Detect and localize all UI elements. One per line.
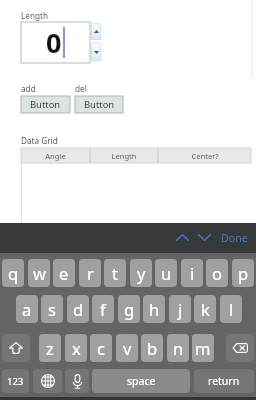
staticText: v <box>123 337 132 359</box>
button[interactable]: u <box>155 259 177 287</box>
staticText: j <box>178 298 183 320</box>
staticText: 0 <box>46 24 62 61</box>
button[interactable]: Dictation <box>65 369 89 393</box>
button[interactable]: n <box>167 334 189 362</box>
staticText: g <box>124 298 135 320</box>
staticText: t <box>112 262 118 284</box>
button[interactable]: return <box>194 369 254 393</box>
staticText: Center? <box>191 151 219 161</box>
staticText: h <box>149 298 160 320</box>
button[interactable]: f <box>92 295 114 323</box>
staticText: r <box>87 262 94 284</box>
button[interactable]: m <box>192 334 214 362</box>
staticText: d <box>73 298 84 320</box>
button[interactable]: b <box>141 334 163 362</box>
staticText: 123 <box>7 375 24 388</box>
button[interactable]: y <box>130 259 152 287</box>
staticText: c <box>97 337 105 359</box>
button[interactable]: Backspace <box>226 334 254 362</box>
button[interactable]: Switch keyboard <box>33 369 62 393</box>
button[interactable]: d <box>67 295 89 323</box>
button[interactable]: v <box>116 334 138 362</box>
button[interactable]: Angle <box>21 148 90 163</box>
staticText: return <box>208 374 240 388</box>
staticText: k <box>201 298 210 320</box>
staticText: b <box>147 337 158 359</box>
button[interactable]: k <box>194 295 216 323</box>
button[interactable]: Button <box>75 96 123 113</box>
button[interactable]: o <box>206 259 228 287</box>
staticText: Length <box>21 10 49 21</box>
button[interactable]: 123 <box>2 369 29 393</box>
staticText: s <box>48 298 56 320</box>
staticText: z <box>46 337 54 359</box>
staticText: q <box>8 262 19 284</box>
button[interactable]: j <box>169 295 191 323</box>
button[interactable]: p <box>232 259 254 287</box>
staticText: i <box>190 262 195 284</box>
button[interactable]: Next field <box>196 229 212 245</box>
staticText: l <box>229 298 234 320</box>
button[interactable]: s <box>41 295 63 323</box>
button[interactable]: Decrease <box>91 43 101 61</box>
staticText: add <box>21 83 36 94</box>
staticText: Button <box>84 98 115 111</box>
button[interactable]: i <box>181 259 203 287</box>
staticText: u <box>161 262 172 284</box>
button[interactable]: e <box>53 259 75 287</box>
button[interactable]: a <box>16 295 38 323</box>
button[interactable]: Previous field <box>174 229 190 245</box>
staticText: a <box>22 298 32 320</box>
button[interactable]: l <box>220 295 242 323</box>
button[interactable]: c <box>90 334 112 362</box>
button[interactable]: Done <box>218 229 251 247</box>
button[interactable]: x <box>65 334 87 362</box>
button[interactable]: g <box>118 295 140 323</box>
staticText: Button <box>30 98 61 111</box>
button[interactable]: Increase <box>91 23 101 40</box>
button[interactable]: Length <box>90 148 158 163</box>
button[interactable]: space <box>92 369 190 393</box>
staticText: Length <box>111 151 137 161</box>
staticText: o <box>212 262 222 284</box>
button[interactable]: w <box>28 259 50 287</box>
button[interactable]: r <box>79 259 101 287</box>
staticText: del <box>75 83 87 94</box>
staticText: m <box>195 337 211 359</box>
staticText: n <box>173 337 184 359</box>
staticText: f <box>100 298 106 320</box>
staticText: x <box>72 337 81 359</box>
button[interactable]: Button <box>21 96 70 113</box>
staticText: p <box>238 262 249 284</box>
staticText: Data Grid <box>21 135 58 146</box>
staticText: y <box>137 262 146 284</box>
staticText: Angle <box>45 151 66 161</box>
staticText: Done <box>221 231 248 245</box>
staticText: w <box>33 262 46 284</box>
button[interactable]: Shift <box>2 334 30 362</box>
staticText: e <box>59 262 69 284</box>
button[interactable]: Center? <box>158 148 251 163</box>
button[interactable]: h <box>143 295 165 323</box>
button[interactable]: z <box>39 334 61 362</box>
staticText: space <box>127 374 156 388</box>
button[interactable]: t <box>104 259 126 287</box>
button[interactable]: q <box>2 259 24 287</box>
